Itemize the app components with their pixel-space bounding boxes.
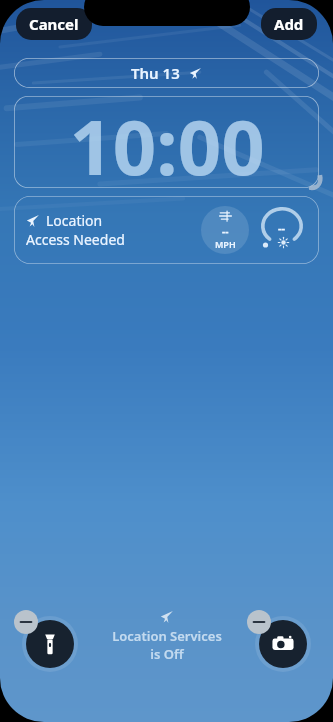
button[interactable]: Camera — [255, 616, 311, 672]
staticText: Location Services — [112, 627, 222, 645]
button[interactable]: Add — [261, 8, 317, 40]
button[interactable]: Cancel — [16, 8, 92, 40]
staticText: -- — [278, 220, 286, 235]
staticText: Location — [46, 211, 103, 230]
staticText: MPH — [215, 238, 236, 250]
button[interactable]: Location — [14, 196, 319, 264]
button[interactable]: 10:00 — [14, 96, 319, 188]
staticText: is Off — [150, 645, 184, 663]
staticText: 10:00 — [69, 96, 265, 186]
staticText: Cancel — [29, 14, 79, 34]
staticText: -- — [222, 224, 229, 238]
button[interactable]: Remove — [14, 610, 38, 634]
button[interactable]: Thu 13 — [14, 58, 319, 88]
button[interactable]: Remove — [247, 610, 271, 634]
button[interactable]: Flashlight — [22, 616, 78, 672]
button[interactable]: UV index — [257, 205, 307, 255]
staticText: Add — [274, 14, 304, 34]
staticText: Access Needed — [26, 230, 125, 249]
button[interactable]: Wind speed — [201, 206, 249, 254]
staticText: Thu 13 — [131, 63, 180, 83]
